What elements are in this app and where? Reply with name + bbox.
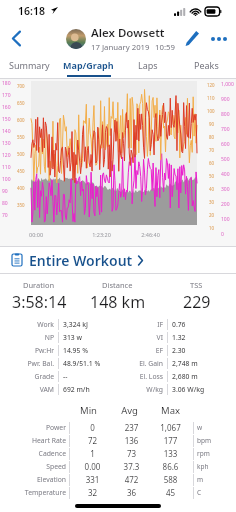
staticText: 600 [221, 141, 230, 148]
staticText: IF [123, 320, 163, 329]
staticText: 133 [151, 448, 190, 459]
staticText: 100 [221, 216, 230, 223]
staticText: Duration [23, 280, 55, 290]
staticText: TSS [190, 280, 203, 290]
staticText: Pwr. Bal. [14, 359, 54, 368]
staticText: 40 [209, 186, 215, 192]
staticText: VAM [14, 385, 54, 394]
staticText: Avg [109, 404, 150, 417]
staticText: 450 [17, 168, 25, 174]
staticText: 80 [2, 200, 8, 207]
staticText: 32 [73, 487, 112, 498]
staticText: 500 [17, 151, 25, 157]
staticText: 2,680 m [172, 372, 222, 381]
staticText: 100 [207, 108, 215, 114]
staticText: 200 [221, 201, 230, 208]
button[interactable]: More options [205, 22, 233, 55]
staticText: w [197, 423, 222, 432]
staticText: 300 [221, 186, 230, 193]
staticText: 692 m/h [63, 385, 113, 394]
staticText: 86.6 [151, 461, 190, 472]
button[interactable]: Edit [179, 22, 205, 55]
staticText: 110 [2, 164, 11, 171]
staticText: 170 [2, 92, 11, 99]
button[interactable]: Peaks [177, 55, 236, 78]
staticText: El. Loss [123, 372, 163, 381]
staticText: 48.9/51.1 % [63, 359, 113, 368]
staticText: 0 [221, 231, 224, 238]
staticText: Heart Rate [14, 436, 66, 445]
staticText: Grade [14, 372, 54, 381]
staticText: 472 [112, 474, 151, 485]
staticText: EF [123, 346, 163, 355]
button[interactable]: Alex Dowsett [66, 25, 175, 53]
staticText: 80 [209, 134, 215, 140]
staticText: kph [197, 462, 222, 471]
staticText: 3,324 kJ [63, 320, 113, 329]
staticText: 140 [2, 128, 11, 135]
staticText: 136 [112, 435, 151, 446]
staticText: Alex Dowsett [91, 25, 165, 41]
staticText: bpm [197, 436, 222, 445]
staticText: 60 [209, 160, 215, 166]
staticText: 36 [112, 487, 151, 498]
staticText: 16:18 [18, 4, 45, 18]
staticText: 2.30 [172, 346, 222, 355]
staticText: 73 [112, 448, 151, 459]
staticText: Elevation [14, 475, 66, 484]
staticText: 400 [221, 171, 230, 178]
staticText: 3:58:14 [12, 291, 67, 313]
staticText: Laps [138, 59, 158, 71]
staticText: 400 [17, 185, 25, 191]
staticText: 90 [2, 188, 8, 195]
staticText: 14.95 % [63, 346, 113, 355]
staticText: Speed [14, 462, 66, 471]
staticText: 17 January 2019 [91, 42, 150, 53]
staticText: 50 [209, 173, 215, 179]
staticText: Peaks [194, 59, 219, 71]
staticText: 600 [17, 117, 25, 123]
staticText: 20 [209, 212, 215, 218]
staticText: 588 [151, 474, 190, 485]
staticText: 229 [183, 291, 211, 313]
staticText: Power [14, 423, 66, 432]
staticText: Cadence [14, 449, 66, 458]
staticText: 1 [73, 448, 112, 459]
staticText: Pw:Hr [14, 346, 54, 355]
staticText: Max [150, 404, 191, 417]
staticText: 160 [2, 104, 11, 111]
button[interactable]: Entire Workout [0, 247, 236, 273]
staticText: 00:00 [29, 231, 77, 238]
staticText: 72 [73, 435, 112, 446]
staticText: 10:59 [155, 42, 175, 53]
staticText: 2:46:40 [126, 231, 175, 238]
staticText: 237 [112, 422, 151, 433]
staticText: El. Gain [123, 359, 163, 368]
staticText: 0.76 [172, 320, 222, 329]
staticText: 1:23:20 [77, 231, 126, 238]
staticText: 180 [2, 80, 11, 87]
button[interactable]: Map/Graph [59, 55, 118, 78]
staticText: m [197, 475, 222, 484]
staticText: 148 km [90, 291, 146, 313]
button[interactable]: Summary [0, 55, 59, 78]
staticText: 37.3 [112, 461, 151, 472]
staticText: 900 [221, 96, 230, 103]
staticText: 130 [2, 140, 11, 147]
staticText: 500 [221, 156, 230, 163]
staticText: NP [14, 333, 54, 342]
staticText: Distance [102, 280, 133, 290]
staticText: 700 [221, 126, 230, 133]
staticText: Min [68, 404, 109, 417]
staticText: W/kg [123, 385, 163, 394]
staticText: 30 [209, 199, 215, 205]
staticText: 313 w [63, 333, 113, 342]
button[interactable]: Laps [118, 55, 177, 78]
staticText: -- [63, 372, 113, 381]
staticText: 331 [73, 474, 112, 485]
staticText: C [197, 488, 222, 497]
button[interactable]: Back [0, 22, 32, 55]
staticText: 70 [2, 212, 8, 219]
staticText: 10 [209, 225, 215, 231]
staticText: 70 [209, 147, 215, 153]
